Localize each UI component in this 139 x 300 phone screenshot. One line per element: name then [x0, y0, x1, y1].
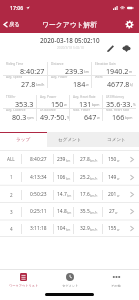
staticText: km: [66, 177, 71, 181]
staticText: 184: [73, 79, 86, 88]
staticText: m: [129, 69, 133, 74]
button[interactable]: Upload: [120, 43, 133, 54]
button[interactable]: 4: [0, 220, 139, 237]
button[interactable]: コメント: [93, 132, 139, 147]
button[interactable]: 2: [0, 186, 139, 203]
staticText: 353.3: [15, 99, 34, 108]
staticText: LR Balance: [40, 108, 56, 112]
staticText: km/h: [90, 228, 98, 232]
staticText: 49.7·50.3: [40, 112, 67, 121]
staticText: 1940.2: [106, 66, 129, 75]
staticText: 150: [108, 156, 117, 163]
button[interactable]: セグメント: [47, 132, 93, 147]
staticText: bpm: [92, 102, 100, 107]
staticText: 35.5: [80, 208, 90, 215]
staticText: 14.7: [57, 191, 67, 198]
staticText: 27: [109, 208, 115, 215]
staticText: w: [117, 228, 120, 232]
staticText: 17:06: [10, 4, 24, 11]
staticText: 1: [10, 174, 13, 180]
staticText: Avg. Speed: [6, 75, 23, 79]
staticText: ワークアウト解析: [42, 20, 98, 29]
staticText: 14.8: [57, 208, 67, 215]
staticText: w: [115, 211, 118, 215]
staticText: Distance: [51, 62, 64, 66]
staticText: ALL: [7, 156, 15, 162]
staticText: ラップ: [16, 137, 31, 143]
staticText: w: [97, 115, 100, 120]
staticText: Avg. Heart Rate: [73, 95, 96, 99]
button[interactable]: セグメント: [47, 270, 93, 287]
button[interactable]: ALL: [0, 150, 139, 168]
staticText: km/h: [90, 194, 98, 198]
staticText: 166: [112, 112, 125, 121]
staticText: 8:40:27: [30, 156, 47, 163]
button[interactable]: 3: [0, 203, 139, 220]
staticText: w: [117, 177, 120, 181]
staticText: Avg. Power: [51, 75, 68, 79]
staticText: 2020-03-18 05:02:10: [40, 36, 100, 45]
staticText: 201: [108, 191, 117, 198]
staticText: 4: [10, 226, 13, 232]
staticText: 2020/3/18 5:02:10: [57, 46, 84, 50]
staticText: Max. Heart Rate: [106, 108, 130, 112]
staticText: w: [86, 82, 89, 87]
button[interactable]: 戻る: [0, 15, 24, 33]
staticText: 25.2: [80, 174, 90, 181]
button[interactable]: ワークアウトリスト: [0, 270, 47, 287]
staticText: rpm: [27, 115, 34, 120]
staticText: セグメント: [58, 137, 82, 143]
staticText: TSS/hr: [6, 95, 16, 99]
staticText: kJ: [130, 82, 133, 87]
staticText: 27.8: [80, 156, 90, 163]
staticText: Work: [95, 75, 103, 79]
staticText: 0:50:23: [30, 191, 47, 198]
button[interactable]: 1: [0, 168, 139, 186]
staticText: w: [117, 159, 120, 163]
staticText: km/h: [90, 159, 98, 163]
staticText: w: [64, 102, 67, 107]
staticText: w: [117, 194, 120, 198]
staticText: Elevation Gain: [95, 62, 116, 66]
staticText: 27.8: [21, 79, 36, 88]
staticText: 4677.8: [107, 79, 130, 88]
staticText: 80.3: [12, 112, 27, 121]
staticText: Max. Power: [73, 108, 90, 112]
staticText: 3: [10, 209, 13, 215]
staticText: 17.6: [80, 191, 90, 198]
staticText: Avg. Cadence: [6, 108, 26, 112]
staticText: 239: [57, 156, 66, 163]
button[interactable]: Settings: [120, 15, 139, 33]
staticText: 131: [79, 99, 92, 108]
staticText: 647: [84, 112, 97, 121]
staticText: Riding Time: [6, 62, 24, 66]
staticText: 32.9: [80, 225, 90, 232]
staticText: bpm: [125, 115, 133, 120]
staticText: Avg. Power: [40, 95, 57, 99]
staticText: km/h: [36, 82, 45, 87]
staticText: ワークアウトリスト: [9, 284, 39, 287]
button[interactable]: その他: [93, 270, 139, 287]
staticText: km: [84, 69, 89, 74]
staticText: 35.6·33.4: [106, 99, 133, 108]
staticText: 155: [108, 225, 117, 232]
staticText: 149: [108, 174, 117, 181]
staticText: LR Efficiency: [106, 95, 124, 99]
staticText: 戻る: [9, 21, 20, 28]
staticText: その他: [111, 284, 121, 287]
staticText: 104: [57, 225, 66, 232]
staticText: km/h: [90, 211, 98, 215]
staticText: 0:25:11: [30, 208, 47, 215]
staticText: 8:40:27: [20, 66, 45, 75]
staticText: セグメント: [62, 284, 79, 287]
staticText: km/h: [90, 177, 98, 181]
staticText: km: [67, 211, 72, 215]
staticText: 2: [10, 192, 13, 198]
staticText: km: [66, 159, 71, 163]
staticText: km: [66, 228, 71, 232]
staticText: 106: [57, 174, 66, 181]
button[interactable]: Edit: [105, 43, 116, 54]
staticText: 239.3: [65, 66, 84, 75]
button[interactable]: ラップ: [0, 132, 47, 147]
staticText: km: [67, 194, 72, 198]
